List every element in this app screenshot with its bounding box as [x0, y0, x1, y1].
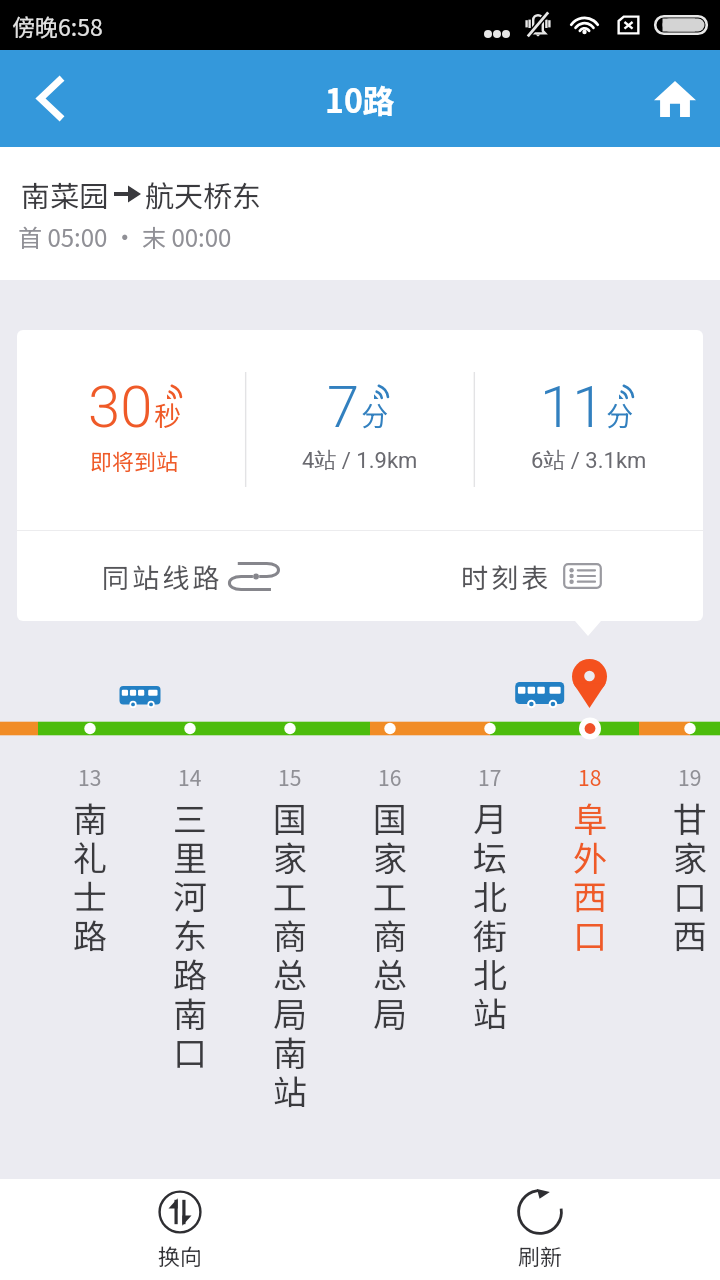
- button[interactable]: 19: [640, 762, 720, 959]
- button[interactable]: 14: [140, 762, 240, 1076]
- staticText: 航天桥东: [145, 173, 262, 215]
- staticText: 4站 / 1.9km: [302, 447, 418, 475]
- staticText: 国 家 工 商 总 局: [373, 793, 407, 1037]
- staticText: 秒: [154, 395, 180, 434]
- button[interactable]: Home: [630, 50, 720, 147]
- staticText: 南 礼 士 路: [73, 793, 107, 959]
- button[interactable]: 11: [474, 330, 703, 530]
- staticText: 首 05:00 · 末 00:00: [18, 219, 232, 254]
- staticText: 时刻表: [461, 557, 552, 596]
- staticText: 阜 外 西 口: [573, 793, 607, 959]
- staticText: 国 家 工 商 总 局 南 站: [273, 793, 307, 1115]
- staticText: 南菜园: [21, 173, 109, 215]
- staticText: 17: [478, 762, 502, 792]
- staticText: 同站线路: [102, 557, 223, 596]
- staticText: 傍晚6:58: [12, 9, 103, 42]
- staticText: 13: [78, 762, 102, 792]
- button[interactable]: 7: [245, 330, 474, 530]
- staticText: 10路: [325, 76, 395, 122]
- staticText: 15: [278, 762, 302, 792]
- button[interactable]: 刷新: [360, 1179, 720, 1280]
- button[interactable]: 15: [240, 762, 340, 1115]
- button[interactable]: 时刻表: [360, 531, 703, 621]
- staticText: 19: [678, 762, 702, 792]
- staticText: 换向: [158, 1239, 203, 1271]
- staticText: 刷新: [518, 1239, 563, 1271]
- button[interactable]: 18: [540, 762, 640, 959]
- button[interactable]: 17: [440, 762, 540, 1037]
- staticText: 即将到站: [90, 444, 179, 476]
- staticText: 6站 / 3.1km: [531, 447, 647, 475]
- staticText: 甘 家 口 西: [673, 793, 707, 959]
- button[interactable]: 13: [40, 762, 140, 959]
- button[interactable]: 30: [17, 330, 245, 530]
- staticText: 16: [378, 762, 402, 792]
- button[interactable]: 换向: [0, 1179, 360, 1280]
- staticText: 30: [88, 373, 153, 441]
- staticText: 11: [540, 373, 605, 441]
- staticText: 分: [361, 395, 387, 434]
- staticText: 月 坛 北 街 北 站: [473, 793, 507, 1037]
- staticText: 7: [327, 373, 360, 441]
- button[interactable]: 同站线路: [17, 531, 360, 621]
- staticText: 18: [578, 762, 602, 792]
- staticText: 14: [178, 762, 202, 792]
- staticText: 三 里 河 东 路 南 口: [173, 793, 207, 1076]
- staticText: 分: [606, 395, 632, 434]
- button[interactable]: Back: [0, 50, 100, 147]
- button[interactable]: 16: [340, 762, 440, 1037]
